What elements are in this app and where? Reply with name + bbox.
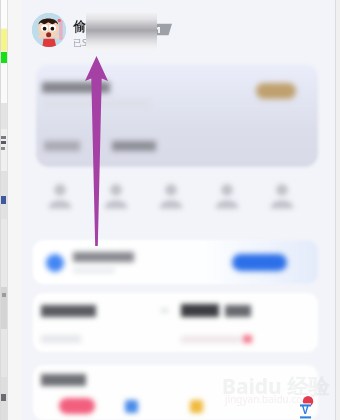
button[interactable]	[36, 64, 318, 167]
button[interactable]: Contact	[205, 176, 249, 216]
button[interactable]: 偷	[22, 0, 335, 60]
button[interactable]: Contact	[260, 176, 304, 216]
staticText: Baidu 经验	[222, 372, 330, 401]
button[interactable]: Contact	[38, 176, 82, 216]
staticText: 偷	[73, 18, 86, 34]
staticText: jingyan.baidu.com	[225, 392, 312, 406]
button[interactable]: Contact	[94, 176, 138, 216]
button[interactable]	[33, 365, 318, 420]
staticText: 1	[156, 23, 162, 35]
button[interactable]: Contact	[149, 176, 193, 216]
staticText: 已S	[73, 36, 87, 48]
button[interactable]	[33, 293, 318, 352]
staticText: V	[302, 403, 309, 417]
button[interactable]	[33, 240, 318, 284]
